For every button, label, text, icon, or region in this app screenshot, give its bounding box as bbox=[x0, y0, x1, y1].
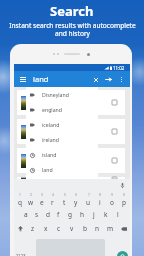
staticText: 5 bbox=[64, 192, 66, 197]
button[interactable]: 3 bbox=[36, 192, 47, 207]
button[interactable]: Shift bbox=[14, 221, 27, 236]
button[interactable] bbox=[17, 119, 125, 144]
button[interactable]: land bbox=[26, 162, 98, 177]
staticText: z bbox=[31, 224, 35, 233]
button[interactable]: 9 bbox=[106, 192, 118, 207]
staticText: Disneyland bbox=[42, 91, 69, 98]
button[interactable]: Backspace bbox=[117, 221, 130, 236]
staticText: Instant search results with autocomplete… bbox=[9, 21, 136, 38]
button[interactable]: h bbox=[76, 207, 88, 221]
button[interactable]: n bbox=[91, 221, 104, 236]
button[interactable]: x bbox=[39, 221, 52, 236]
button[interactable]: 6 bbox=[70, 192, 82, 207]
staticText: s bbox=[35, 210, 39, 219]
staticText: 6 bbox=[75, 192, 77, 197]
staticText: 8 bbox=[99, 192, 101, 197]
button[interactable]: 2 bbox=[25, 192, 36, 207]
button[interactable]: 0 bbox=[118, 192, 130, 207]
staticText: 2 bbox=[30, 192, 32, 197]
staticText: 3 bbox=[41, 192, 43, 197]
staticText: land bbox=[42, 166, 53, 173]
staticText: o bbox=[110, 198, 114, 207]
staticText: land bbox=[33, 74, 49, 84]
staticText: e bbox=[40, 198, 44, 207]
staticText: j bbox=[93, 210, 95, 219]
button[interactable]: b bbox=[78, 221, 91, 236]
button[interactable]: 8 bbox=[94, 192, 106, 207]
staticText: v bbox=[70, 224, 74, 233]
staticText: f bbox=[57, 210, 60, 219]
button[interactable]: s bbox=[31, 207, 42, 221]
staticText: ireland bbox=[42, 136, 59, 143]
staticText: b bbox=[83, 224, 87, 233]
staticText: m bbox=[107, 224, 114, 233]
button[interactable]: More options bbox=[116, 74, 126, 84]
button[interactable]: z bbox=[27, 221, 39, 236]
staticText: t bbox=[63, 198, 66, 207]
button[interactable]: m bbox=[104, 221, 117, 236]
button[interactable]: ?123 bbox=[14, 236, 27, 256]
button[interactable]: Submit search bbox=[103, 74, 114, 85]
staticText: q bbox=[18, 198, 22, 207]
staticText: a bbox=[24, 210, 28, 219]
staticText: c bbox=[57, 224, 61, 233]
staticText: 11:02 bbox=[113, 65, 125, 71]
staticText: iceland bbox=[42, 121, 60, 128]
staticText: Search bbox=[50, 2, 94, 20]
button[interactable]: j bbox=[88, 207, 100, 221]
button[interactable]: Clear query bbox=[90, 74, 101, 85]
staticText: d bbox=[46, 210, 50, 219]
button[interactable]: 5 bbox=[58, 192, 70, 207]
button[interactable]: england bbox=[26, 102, 98, 117]
staticText: 0 bbox=[123, 192, 125, 197]
button[interactable]: d bbox=[42, 207, 53, 221]
button[interactable]: Voice input bbox=[119, 182, 126, 189]
staticText: h bbox=[80, 210, 85, 219]
button[interactable]: a bbox=[20, 207, 31, 221]
button[interactable]: g bbox=[64, 207, 76, 221]
button[interactable]: island bbox=[26, 147, 98, 162]
button[interactable]: l bbox=[112, 207, 124, 221]
button[interactable]: Open navigation menu bbox=[17, 74, 28, 85]
staticText: w bbox=[28, 198, 34, 207]
button[interactable]: f bbox=[53, 207, 64, 221]
staticText: 4 bbox=[52, 192, 54, 197]
staticText: p bbox=[122, 198, 126, 207]
button[interactable] bbox=[17, 148, 125, 173]
staticText: g bbox=[68, 210, 72, 219]
button[interactable]: 7 bbox=[82, 192, 94, 207]
staticText: 1 bbox=[19, 192, 21, 197]
staticText: x bbox=[44, 224, 48, 233]
button[interactable]: c bbox=[52, 221, 65, 236]
staticText: l bbox=[117, 210, 119, 219]
button[interactable]: v bbox=[65, 221, 78, 236]
staticText: england bbox=[42, 106, 62, 113]
staticText: 9 bbox=[111, 192, 113, 197]
button[interactable] bbox=[17, 177, 125, 179]
button[interactable]: Search bbox=[117, 251, 128, 256]
button[interactable]: ireland bbox=[26, 132, 98, 147]
button[interactable]: iceland bbox=[26, 117, 98, 132]
staticText: n bbox=[95, 224, 100, 233]
staticText: island bbox=[42, 151, 57, 158]
staticText: y bbox=[74, 198, 78, 207]
staticText: k bbox=[104, 210, 108, 219]
staticText: ?123 bbox=[16, 253, 26, 256]
staticText: i bbox=[99, 198, 101, 207]
button[interactable]: k bbox=[100, 207, 112, 221]
staticText: u bbox=[86, 198, 91, 207]
button[interactable]: 1 bbox=[14, 192, 25, 207]
staticText: 7 bbox=[88, 192, 90, 197]
staticText: r bbox=[51, 198, 54, 207]
button[interactable]: 4 bbox=[47, 192, 58, 207]
button[interactable]: Disneyland bbox=[26, 87, 98, 102]
button[interactable] bbox=[17, 90, 125, 115]
